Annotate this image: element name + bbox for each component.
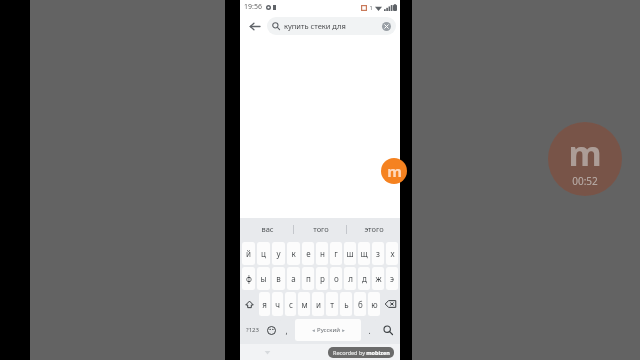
staticText: m xyxy=(387,161,402,181)
staticText: ц xyxy=(261,248,266,259)
staticText: 1 xyxy=(369,4,373,11)
button[interactable]: й xyxy=(242,242,255,265)
button[interactable]: Shift xyxy=(242,292,257,316)
staticText: 19:56 xyxy=(244,2,262,12)
button[interactable]: я xyxy=(259,292,270,316)
button[interactable]: ч xyxy=(272,292,283,316)
button[interactable]: и xyxy=(312,292,324,316)
staticText: 00:52 xyxy=(572,174,598,188)
staticText: ф xyxy=(246,273,252,284)
staticText: х xyxy=(390,248,395,259)
button[interactable]: того xyxy=(294,218,347,240)
staticText: а xyxy=(291,273,296,284)
button[interactable]: ц xyxy=(257,242,270,265)
button[interactable]: щ xyxy=(358,242,370,265)
staticText: ?123 xyxy=(246,326,259,334)
button[interactable]: ю xyxy=(368,292,380,316)
staticText: е xyxy=(306,248,311,259)
staticText: mobizen xyxy=(366,349,390,356)
staticText: . xyxy=(368,325,371,336)
staticText: этого xyxy=(364,224,384,234)
staticText: г xyxy=(334,248,338,259)
button[interactable]: э xyxy=(386,267,398,290)
staticText: ь xyxy=(344,299,349,310)
button[interactable]: б xyxy=(354,292,366,316)
button[interactable]: ф xyxy=(242,267,255,290)
button[interactable]: х xyxy=(386,242,398,265)
staticText: того xyxy=(313,224,329,234)
staticText: э xyxy=(390,273,394,284)
button[interactable]: , xyxy=(280,318,293,342)
button[interactable]: Backspace xyxy=(382,292,398,316)
staticText: m xyxy=(568,130,602,176)
staticText: купить стеки для xyxy=(284,21,381,31)
staticText: ю xyxy=(371,299,378,310)
button[interactable]: п xyxy=(302,267,314,290)
staticText: щ xyxy=(360,248,368,259)
staticText: р xyxy=(320,273,325,284)
button[interactable]: Recording control xyxy=(381,158,407,184)
button[interactable]: Back xyxy=(244,16,264,36)
staticText: н xyxy=(320,248,325,259)
button[interactable]: р xyxy=(316,267,328,290)
staticText: м xyxy=(301,299,308,310)
button[interactable]: Clear query xyxy=(381,21,391,31)
button[interactable]: . xyxy=(363,318,376,342)
staticText: о xyxy=(334,273,339,284)
button[interactable]: т xyxy=(326,292,338,316)
staticText: б xyxy=(358,299,363,310)
button[interactable]: г xyxy=(330,242,342,265)
button[interactable]: з xyxy=(372,242,384,265)
staticText: и xyxy=(316,299,321,310)
button[interactable]: ы xyxy=(257,267,270,290)
staticText: п xyxy=(306,273,311,284)
staticText: у xyxy=(276,248,281,259)
button[interactable]: с xyxy=(285,292,296,316)
staticText: л xyxy=(348,273,353,284)
staticText: ч xyxy=(275,299,280,310)
staticText: ◂ xyxy=(312,327,315,333)
button[interactable]: Space xyxy=(295,319,361,341)
staticText: ▸ xyxy=(342,327,345,333)
staticText: Recorded by xyxy=(332,349,366,356)
staticText: , xyxy=(285,325,288,336)
button[interactable]: л xyxy=(344,267,356,290)
staticText: й xyxy=(246,248,251,259)
button[interactable]: купить стеки для xyxy=(267,17,396,35)
button[interactable]: у xyxy=(272,242,285,265)
button[interactable]: Search xyxy=(377,317,399,343)
staticText: с xyxy=(289,299,293,310)
button[interactable]: вас xyxy=(240,218,294,240)
button[interactable]: ш xyxy=(344,242,356,265)
staticText: ж xyxy=(375,273,382,284)
button[interactable]: ь xyxy=(340,292,352,316)
button[interactable]: этого xyxy=(347,218,400,240)
staticText: к xyxy=(291,248,296,259)
button[interactable]: о xyxy=(330,267,342,290)
button[interactable]: ж xyxy=(372,267,384,290)
button[interactable]: н xyxy=(316,242,328,265)
staticText: вас xyxy=(261,224,274,234)
button[interactable]: Emoji xyxy=(263,317,279,343)
staticText: д xyxy=(362,273,367,284)
staticText: т xyxy=(330,299,334,310)
staticText: ы xyxy=(260,273,267,284)
button[interactable]: ?123 xyxy=(242,318,262,342)
staticText: з xyxy=(376,248,380,259)
staticText: Русский xyxy=(317,326,340,334)
button[interactable]: е xyxy=(302,242,314,265)
button[interactable]: в xyxy=(272,267,285,290)
staticText: в xyxy=(276,273,281,284)
staticText: я xyxy=(262,299,267,310)
button[interactable]: д xyxy=(358,267,370,290)
button[interactable]: к xyxy=(287,242,300,265)
staticText: ш xyxy=(346,248,354,259)
button[interactable]: а xyxy=(287,267,300,290)
button[interactable]: м xyxy=(298,292,310,316)
